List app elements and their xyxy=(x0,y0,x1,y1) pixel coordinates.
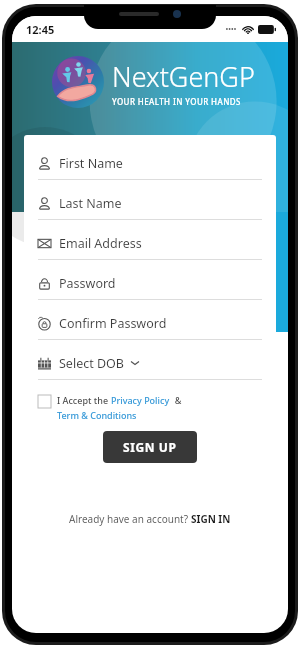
button[interactable]: SIGN IN xyxy=(191,512,231,526)
staticText: NextGenGP xyxy=(112,58,255,95)
staticText: Already have an account? xyxy=(69,512,191,526)
button[interactable]: Last Name xyxy=(38,187,262,227)
staticText: Confirm Password xyxy=(59,315,167,332)
button[interactable]: Term & Conditions xyxy=(57,409,137,421)
staticText: Email Address xyxy=(59,235,142,252)
button[interactable]: Email Address xyxy=(38,227,262,267)
button[interactable]: Confirm Password xyxy=(38,307,262,347)
staticText: Password xyxy=(59,275,116,292)
staticText: & xyxy=(170,394,182,406)
staticText: I Accept the xyxy=(57,394,111,406)
button[interactable]: Select DOB xyxy=(38,347,262,380)
staticText: Last Name xyxy=(59,195,122,212)
button[interactable]: SIGN UP xyxy=(103,431,197,463)
button[interactable]: Privacy Policy xyxy=(111,394,170,406)
staticText: Select DOB xyxy=(59,355,124,372)
button[interactable]: First Name xyxy=(38,147,262,187)
staticText: First Name xyxy=(59,155,123,172)
staticText: SIGN UP xyxy=(123,439,177,455)
button[interactable]: Password xyxy=(38,267,262,307)
staticText: 12:45 xyxy=(26,22,55,37)
staticText: YOUR HEALTH IN YOUR HANDS xyxy=(112,96,241,107)
button[interactable]: Accept terms checkbox xyxy=(38,395,51,408)
